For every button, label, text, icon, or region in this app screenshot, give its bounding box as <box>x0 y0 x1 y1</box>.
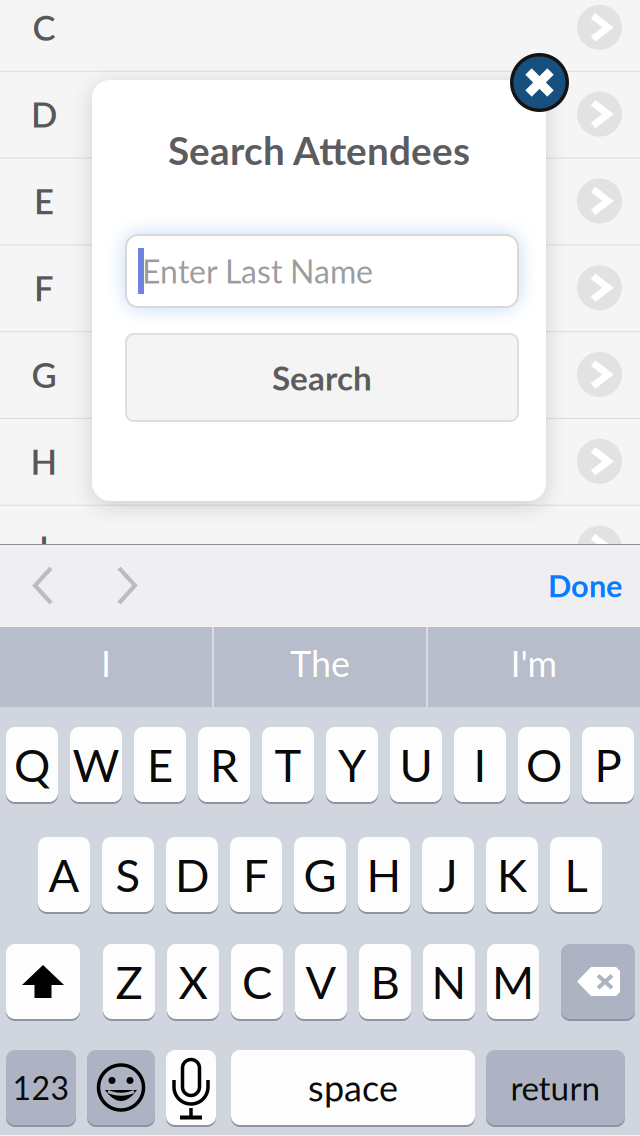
staticText: Y <box>338 737 366 792</box>
staticText: K <box>497 847 527 902</box>
button[interactable]: A <box>38 837 90 914</box>
staticText: D <box>175 847 209 902</box>
staticText: The <box>290 641 350 685</box>
button[interactable]: G <box>0 331 640 418</box>
staticText: H <box>30 440 57 482</box>
button[interactable]: I'm <box>428 627 640 707</box>
staticText: return <box>510 1067 600 1107</box>
button[interactable]: E <box>134 727 186 804</box>
button[interactable]: I <box>0 505 640 591</box>
button[interactable]: C <box>231 944 283 1021</box>
staticText: Q <box>14 737 50 792</box>
staticText: Search <box>272 357 372 397</box>
button[interactable]: I <box>454 727 506 804</box>
button[interactable]: L <box>550 837 602 914</box>
staticText: Enter Last Name <box>142 252 373 290</box>
button[interactable]: M <box>487 944 539 1021</box>
staticText: Done <box>548 567 622 604</box>
staticText: C <box>242 954 272 1009</box>
button[interactable]: R <box>198 727 250 804</box>
staticText: G <box>303 847 336 902</box>
staticText: S <box>115 847 140 902</box>
staticText: 123 <box>12 1068 69 1107</box>
staticText: L <box>564 847 587 902</box>
button[interactable]: D <box>166 837 218 914</box>
button[interactable]: Next field <box>101 544 153 627</box>
staticText: space <box>308 1066 398 1109</box>
staticText: R <box>210 737 238 792</box>
staticText: H <box>366 847 401 902</box>
staticText: I <box>39 527 49 569</box>
button[interactable]: S <box>102 837 154 914</box>
staticText: C <box>32 7 55 48</box>
button[interactable]: D <box>0 71 640 158</box>
staticText: I <box>101 641 111 685</box>
button[interactable]: Close <box>510 53 569 112</box>
button[interactable]: return <box>486 1050 625 1127</box>
button[interactable]: Delete <box>561 944 635 1021</box>
button[interactable]: J <box>422 837 474 914</box>
button[interactable]: W <box>70 727 122 804</box>
button[interactable]: V <box>295 944 347 1021</box>
button[interactable]: F <box>230 837 282 914</box>
staticText: W <box>72 737 119 792</box>
staticText: D <box>31 93 57 135</box>
button[interactable]: H <box>0 418 640 505</box>
button[interactable]: T <box>262 727 314 804</box>
staticText: M <box>492 954 534 1009</box>
staticText: X <box>178 954 207 1009</box>
staticText: I'm <box>510 641 557 685</box>
button[interactable]: Dictation <box>166 1050 216 1127</box>
button[interactable]: O <box>518 727 570 804</box>
staticText: Z <box>115 954 142 1009</box>
staticText: O <box>526 737 562 792</box>
button[interactable]: 123 <box>6 1050 76 1127</box>
button[interactable]: K <box>486 837 538 914</box>
staticText: F <box>243 847 269 902</box>
button[interactable]: X <box>167 944 219 1021</box>
button[interactable]: P <box>582 727 634 804</box>
staticText: I <box>473 737 486 792</box>
button[interactable]: Emoji <box>87 1050 155 1127</box>
button[interactable]: H <box>358 837 410 914</box>
button[interactable]: C <box>0 0 640 71</box>
button[interactable]: Search <box>126 334 518 421</box>
button[interactable]: The <box>214 627 426 707</box>
staticText: V <box>305 954 336 1009</box>
button[interactable]: I <box>0 627 212 707</box>
staticText: T <box>274 737 301 792</box>
button[interactable]: E <box>0 158 640 244</box>
button[interactable]: Enter Last Name <box>126 235 518 307</box>
staticText: E <box>34 180 54 222</box>
button[interactable]: Done <box>530 544 640 627</box>
staticText: U <box>399 737 432 792</box>
staticText: P <box>594 737 621 792</box>
staticText: E <box>147 737 173 792</box>
button[interactable]: N <box>423 944 475 1021</box>
button[interactable]: space <box>231 1050 475 1127</box>
staticText: B <box>370 954 399 1009</box>
button[interactable]: U <box>390 727 442 804</box>
staticText: F <box>34 267 54 308</box>
button[interactable]: F <box>0 244 640 331</box>
button[interactable]: Y <box>326 727 378 804</box>
staticText: A <box>48 847 79 902</box>
button[interactable]: G <box>294 837 346 914</box>
button[interactable]: Previous field <box>17 544 69 627</box>
staticText: G <box>31 354 56 395</box>
staticText: J <box>438 847 457 902</box>
button[interactable]: B <box>359 944 411 1021</box>
staticText: N <box>431 954 466 1009</box>
button[interactable]: Shift <box>6 944 80 1021</box>
staticText: Search Attendees <box>168 127 470 173</box>
button[interactable]: Z <box>103 944 155 1021</box>
button[interactable]: Q <box>6 727 58 804</box>
